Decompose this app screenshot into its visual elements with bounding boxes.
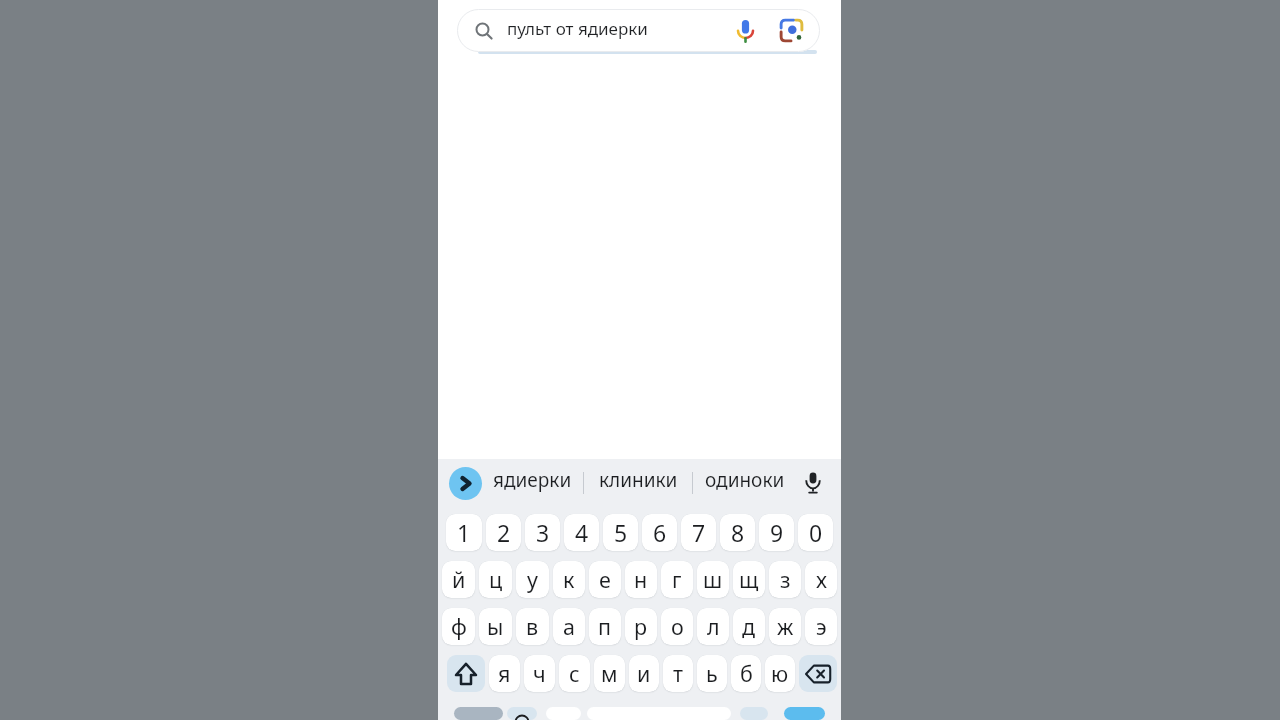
staticText: х xyxy=(816,565,827,594)
staticText: 6 xyxy=(653,517,667,548)
button[interactable]: л xyxy=(697,608,729,645)
staticText: д xyxy=(742,612,756,641)
button[interactable]: 1 xyxy=(446,514,482,551)
button[interactable]: 8 xyxy=(720,514,755,551)
staticText: ы xyxy=(487,612,504,641)
staticText: ю xyxy=(771,659,789,688)
button[interactable] xyxy=(454,707,503,720)
staticText: ц xyxy=(489,565,503,594)
button[interactable]: 0 xyxy=(798,514,833,551)
button[interactable]: 7 xyxy=(681,514,716,551)
button[interactable]: ь xyxy=(697,655,727,692)
button[interactable] xyxy=(449,467,482,500)
button[interactable] xyxy=(507,707,537,720)
staticText: 2 xyxy=(497,517,511,548)
staticText: с xyxy=(569,659,580,688)
staticText: э xyxy=(816,612,827,641)
staticText: 1 xyxy=(457,517,471,548)
staticText: ф xyxy=(451,612,467,641)
staticText: у xyxy=(527,565,538,594)
button[interactable]: х xyxy=(805,561,837,598)
staticText: и xyxy=(637,659,651,688)
staticText: 3 xyxy=(536,517,550,548)
staticText: 5 xyxy=(614,517,628,548)
button[interactable]: ж xyxy=(769,608,801,645)
staticText: 8 xyxy=(731,517,745,548)
button[interactable]: 5 xyxy=(603,514,638,551)
button[interactable]: н xyxy=(625,561,657,598)
button[interactable]: ы xyxy=(479,608,512,645)
button[interactable]: п xyxy=(589,608,621,645)
staticText: ч xyxy=(533,659,546,688)
staticText: ядиерки xyxy=(493,467,572,493)
staticText: е xyxy=(599,565,611,594)
button[interactable] xyxy=(799,655,837,692)
button[interactable]: клиники xyxy=(584,459,692,507)
button[interactable] xyxy=(740,707,768,720)
staticText: я xyxy=(498,659,511,688)
button[interactable]: ю xyxy=(765,655,795,692)
button[interactable]: а xyxy=(553,608,585,645)
button[interactable]: к xyxy=(553,561,585,598)
button[interactable]: у xyxy=(516,561,549,598)
button[interactable] xyxy=(447,655,485,692)
staticText: ь xyxy=(706,659,718,688)
staticText: 7 xyxy=(692,517,706,548)
button[interactable]: р xyxy=(625,608,657,645)
button[interactable]: 2 xyxy=(486,514,521,551)
button[interactable]: й xyxy=(442,561,475,598)
staticText: й xyxy=(452,565,466,594)
button[interactable]: ц xyxy=(479,561,512,598)
button[interactable]: 9 xyxy=(759,514,794,551)
staticText: клиники xyxy=(599,467,678,493)
button[interactable]: ч xyxy=(524,655,555,692)
staticText: б xyxy=(740,659,753,688)
staticText: п xyxy=(598,612,612,641)
button[interactable] xyxy=(546,707,581,720)
staticText: 9 xyxy=(770,517,784,548)
staticText: 4 xyxy=(575,517,589,548)
button[interactable]: 3 xyxy=(525,514,560,551)
button[interactable]: м xyxy=(594,655,625,692)
staticText: а xyxy=(563,612,575,641)
button[interactable]: э xyxy=(805,608,837,645)
staticText: т xyxy=(673,659,683,688)
button[interactable]: щ xyxy=(733,561,765,598)
button[interactable] xyxy=(779,18,804,43)
button[interactable]: д xyxy=(733,608,765,645)
staticText: г xyxy=(672,565,682,594)
button[interactable] xyxy=(805,471,821,495)
button[interactable] xyxy=(784,711,825,720)
button[interactable]: 4 xyxy=(564,514,599,551)
staticText: 0 xyxy=(809,517,823,548)
staticText: к xyxy=(563,565,575,594)
button[interactable] xyxy=(735,19,756,43)
button[interactable]: в xyxy=(516,608,549,645)
button[interactable]: ш xyxy=(697,561,729,598)
button[interactable]: ядиерки xyxy=(482,459,583,507)
button[interactable]: т xyxy=(663,655,693,692)
button[interactable]: 6 xyxy=(642,514,677,551)
staticText: одиноки xyxy=(705,467,785,493)
button[interactable]: ф xyxy=(442,608,475,645)
staticText: р xyxy=(634,612,648,641)
button[interactable]: з xyxy=(769,561,801,598)
staticText: в xyxy=(526,612,539,641)
staticText: ж xyxy=(777,612,794,641)
button[interactable]: одиноки xyxy=(693,459,797,507)
button[interactable]: пульт от ядиерки xyxy=(457,9,820,52)
button[interactable]: и xyxy=(629,655,659,692)
button[interactable]: с xyxy=(559,655,590,692)
staticText: пульт от ядиерки xyxy=(507,17,648,40)
staticText: ш xyxy=(703,565,723,594)
button[interactable]: о xyxy=(661,608,693,645)
staticText: щ xyxy=(739,565,759,594)
button[interactable]: б xyxy=(731,655,761,692)
button[interactable]: я xyxy=(489,655,520,692)
staticText: з xyxy=(780,565,791,594)
staticText: м xyxy=(601,659,618,688)
button[interactable]: г xyxy=(661,561,693,598)
button[interactable]: е xyxy=(589,561,621,598)
staticText: о xyxy=(671,612,684,641)
